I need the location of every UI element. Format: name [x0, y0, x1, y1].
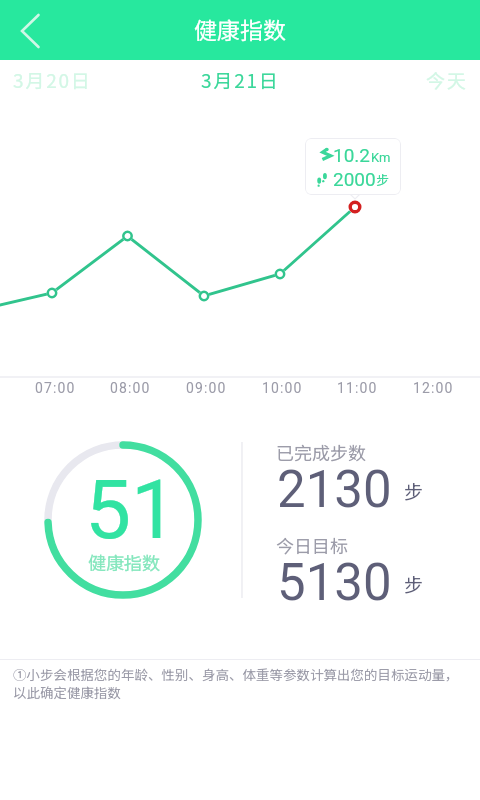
- staticText: 5130: [277, 553, 392, 613]
- button[interactable]: 3月21日: [201, 66, 280, 94]
- staticText: 今日目标: [276, 532, 348, 558]
- button[interactable]: 今天: [426, 66, 468, 94]
- staticText: 健康指数: [88, 549, 160, 575]
- staticText: 51: [85, 462, 178, 558]
- staticText: 已完成步数: [276, 439, 366, 465]
- staticText: 步: [404, 477, 424, 505]
- staticText: 步: [404, 570, 424, 598]
- button[interactable]: 10.2: [305, 138, 401, 195]
- staticText: 12:00: [413, 380, 454, 396]
- staticText: Km: [371, 150, 391, 165]
- staticText: 11:00: [337, 380, 378, 396]
- staticText: 健康指数: [194, 12, 286, 45]
- staticText: 07:00: [35, 380, 76, 396]
- staticText: 步: [376, 170, 390, 189]
- staticText: 10:00: [262, 380, 303, 396]
- staticText: ①小步会根据您的年龄、性别、身高、体重等参数计算出您的目标运动量，以此确定健康指…: [13, 664, 470, 702]
- staticText: 2130: [277, 460, 392, 520]
- button[interactable]: 3月20日: [13, 66, 92, 94]
- staticText: 09:00: [186, 380, 227, 396]
- staticText: 10.2: [333, 144, 371, 166]
- staticText: 08:00: [110, 380, 151, 396]
- button[interactable]: Back: [0, 1, 58, 59]
- staticText: 2000: [333, 168, 376, 190]
